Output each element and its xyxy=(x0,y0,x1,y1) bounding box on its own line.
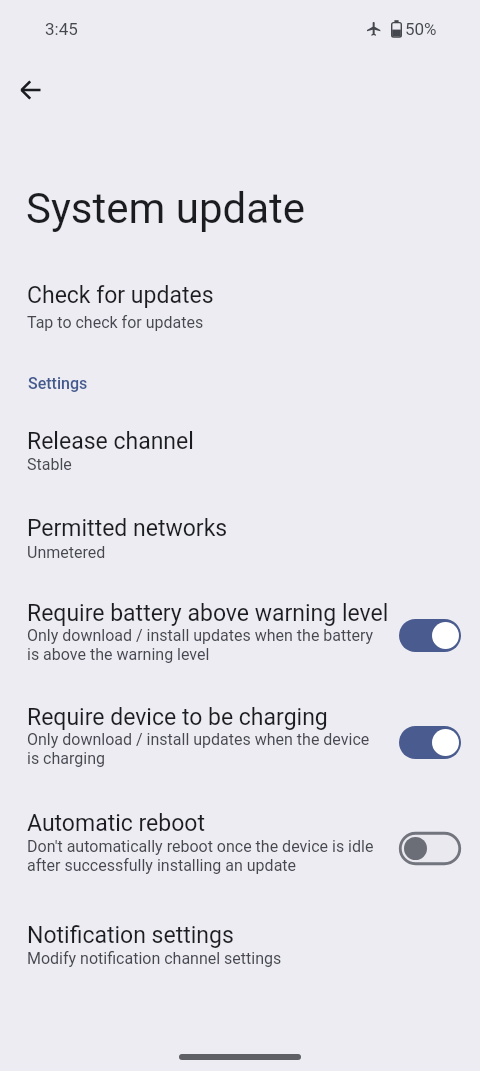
staticText: Settings xyxy=(28,374,88,393)
staticText: 3:45 xyxy=(45,19,78,39)
button[interactable] xyxy=(13,72,49,108)
button[interactable] xyxy=(0,593,480,679)
button[interactable] xyxy=(0,270,480,340)
button[interactable] xyxy=(399,726,461,759)
staticText: Permitted networks xyxy=(27,515,228,542)
staticText: Require device to be charging xyxy=(27,704,328,731)
staticText: Modify notification channel settings xyxy=(27,949,282,968)
staticText: Notification settings xyxy=(27,922,234,949)
staticText: Don't automatically reboot once the devi… xyxy=(27,837,374,875)
staticText: Release channel xyxy=(27,428,194,455)
button[interactable] xyxy=(0,803,480,895)
button[interactable] xyxy=(0,420,480,490)
staticText: Only download / install updates when the… xyxy=(27,730,370,768)
button[interactable] xyxy=(399,619,461,652)
staticText: Unmetered xyxy=(27,543,106,562)
staticText: Only download / install updates when the… xyxy=(27,626,374,664)
staticText: 50% xyxy=(405,19,437,39)
button[interactable] xyxy=(399,832,461,865)
button[interactable] xyxy=(0,915,480,985)
staticText: Stable xyxy=(27,455,72,474)
staticText: Automatic reboot xyxy=(27,810,205,837)
staticText: Require battery above warning level xyxy=(27,600,389,627)
staticText: System update xyxy=(26,184,306,233)
button[interactable] xyxy=(0,697,480,783)
staticText: Tap to check for updates xyxy=(27,313,204,332)
staticText: Check for updates xyxy=(27,282,214,309)
button[interactable] xyxy=(0,508,480,578)
